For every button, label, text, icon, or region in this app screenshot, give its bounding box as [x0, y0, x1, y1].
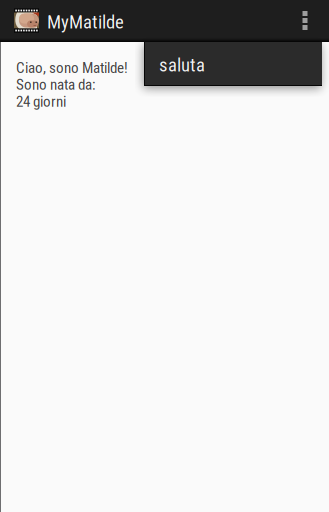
button[interactable]: More options [286, 0, 324, 41]
staticText: MyMatilde [47, 11, 124, 33]
staticText: saluta [159, 54, 205, 76]
staticText: Sono nata da: [16, 76, 96, 94]
button[interactable]: saluta [144, 42, 322, 86]
button[interactable]: MyMatilde [14, 0, 124, 41]
staticText: Ciao, sono Matilde! [16, 59, 128, 77]
staticText: 24 giorni [16, 93, 66, 110]
